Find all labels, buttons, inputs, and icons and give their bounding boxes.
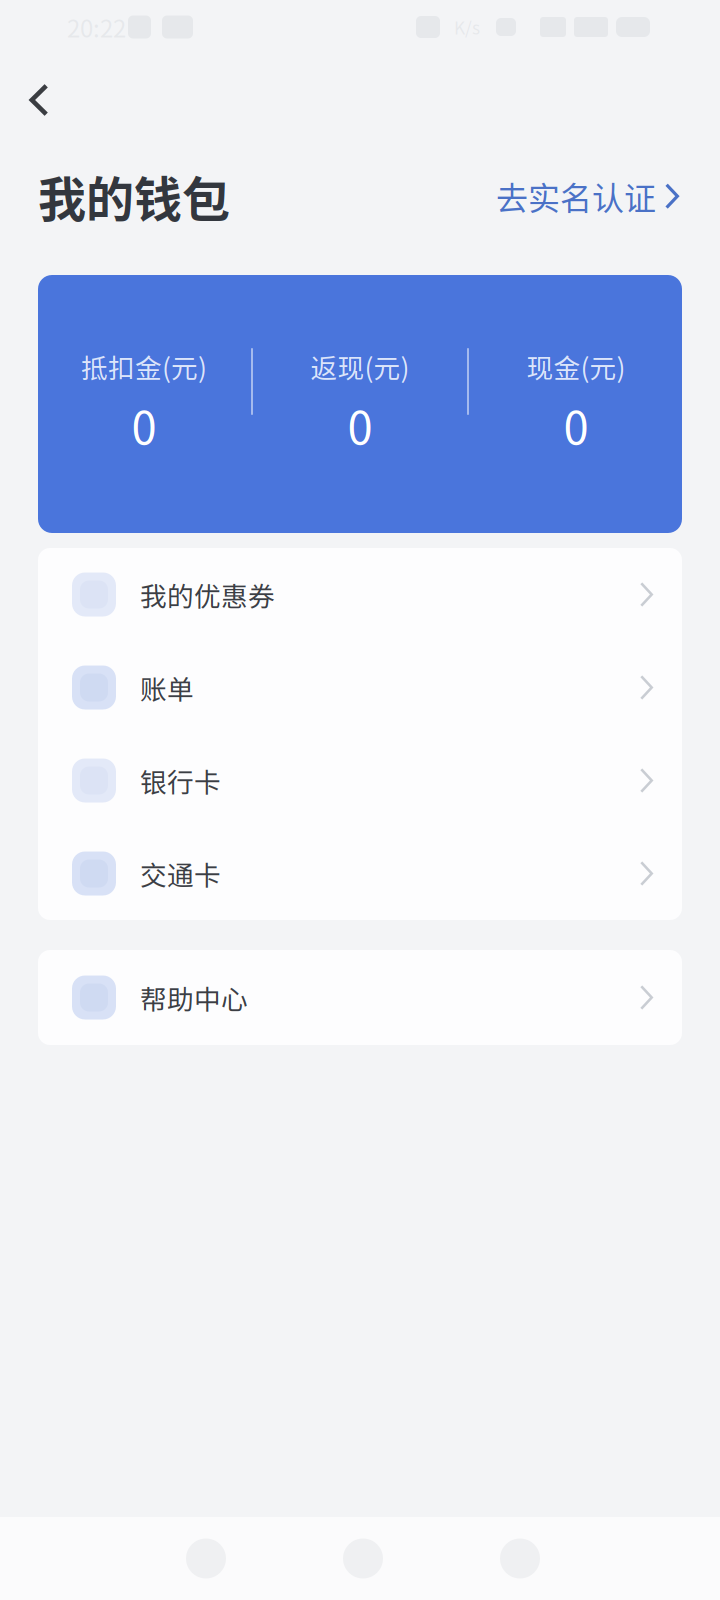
staticText: 交通卡	[140, 854, 221, 893]
button[interactable]: Home	[343, 1538, 383, 1578]
staticText: 0	[131, 392, 156, 457]
button[interactable]: 我的优惠券	[38, 548, 682, 641]
staticText: 我的钱包	[38, 161, 230, 231]
staticText: K/s	[454, 14, 480, 40]
staticText: 0	[563, 392, 588, 457]
staticText: 帮助中心	[140, 978, 248, 1017]
button[interactable]: Back	[0, 54, 78, 146]
staticText: 返现(元)	[310, 347, 409, 386]
button[interactable]: 账单	[38, 641, 682, 734]
button[interactable]: Recents	[500, 1538, 540, 1578]
staticText: 银行卡	[140, 761, 221, 800]
staticText: 去实名认证	[496, 173, 656, 219]
staticText: 账单	[140, 668, 194, 707]
staticText: 我的优惠券	[140, 575, 275, 614]
button[interactable]: Back	[186, 1538, 226, 1578]
button[interactable]: 帮助中心	[38, 951, 682, 1044]
button[interactable]: 交通卡	[38, 827, 682, 920]
staticText: 抵扣金(元)	[81, 347, 207, 386]
button[interactable]: 银行卡	[38, 734, 682, 827]
staticText: 现金(元)	[526, 347, 625, 386]
staticText: 0	[347, 392, 372, 457]
staticText: 20:22	[67, 10, 126, 44]
button[interactable]: 去实名认证	[496, 155, 679, 237]
